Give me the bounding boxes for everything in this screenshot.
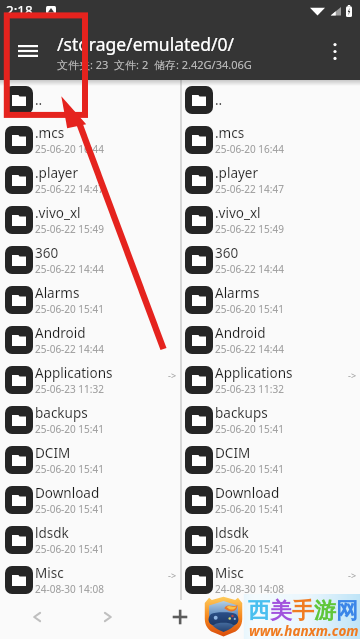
staticText: 2:18 xyxy=(6,2,33,20)
staticText: 25-06-20 15:41 xyxy=(215,302,284,316)
staticText: 24-08-30 14:08 xyxy=(35,582,104,596)
button[interactable]: Misc xyxy=(0,560,180,600)
button[interactable]: Download xyxy=(182,480,360,520)
button[interactable]: Alarms xyxy=(0,280,180,320)
staticText: 25-06-22 14:47 xyxy=(35,182,104,196)
staticText: Alarms xyxy=(35,284,80,302)
staticText: 25-06-20 15:41 xyxy=(35,302,104,316)
staticText: Applications xyxy=(35,364,113,382)
staticText: .. xyxy=(215,91,223,109)
staticText: 25-06-20 15:41 xyxy=(35,542,104,556)
button[interactable]: DCIM xyxy=(182,440,360,480)
staticText: DCIM xyxy=(215,444,251,462)
staticText: 网 xyxy=(336,597,358,625)
button[interactable]: Back xyxy=(20,600,53,633)
staticText: 25-06-20 15:41 xyxy=(215,542,284,556)
staticText: .vivo_xl xyxy=(215,204,261,222)
staticText: Misc xyxy=(35,564,64,582)
staticText: backups xyxy=(35,404,88,422)
staticText: ldsdk xyxy=(215,524,249,542)
staticText: DCIM xyxy=(35,444,71,462)
button[interactable]: Android xyxy=(182,320,360,360)
button[interactable]: Forward xyxy=(91,600,124,633)
button[interactable]: Applications xyxy=(0,360,180,400)
staticText: 手 xyxy=(292,597,314,625)
staticText: Download xyxy=(35,484,100,502)
staticText: .. xyxy=(35,91,43,109)
staticText: 25-06-23 11:32 xyxy=(215,382,284,396)
button[interactable]: backups xyxy=(0,400,180,440)
staticText: 25-06-20 15:41 xyxy=(35,462,104,476)
staticText: -> xyxy=(348,369,357,381)
staticText: 25-06-22 14:44 xyxy=(35,342,104,356)
staticText: 360 xyxy=(35,244,59,262)
button[interactable]: Misc xyxy=(182,560,360,600)
button[interactable]: Alarms xyxy=(182,280,360,320)
staticText: Download xyxy=(215,484,280,502)
staticText: 文件夹: 23 文件: 2 储存: 2.42G/34.06G xyxy=(57,57,252,72)
staticText: backups xyxy=(215,404,268,422)
staticText: Misc xyxy=(215,564,244,582)
staticText: 西 xyxy=(248,597,270,625)
button[interactable]: ldsdk xyxy=(0,520,180,560)
staticText: 25-06-20 15:41 xyxy=(215,462,284,476)
staticText: /storage/emulated/0/ xyxy=(57,32,234,56)
staticText: 25-06-22 14:44 xyxy=(215,262,284,276)
button[interactable]: Download xyxy=(0,480,180,520)
staticText: Alarms xyxy=(215,284,260,302)
staticText: 25-06-22 15:49 xyxy=(35,222,104,236)
staticText: 游 xyxy=(314,597,336,625)
staticText: -> xyxy=(348,569,357,581)
staticText: .mcs xyxy=(215,124,245,142)
staticText: 25-06-23 11:32 xyxy=(35,382,104,396)
staticText: .vivo_xl xyxy=(35,204,81,222)
button[interactable]: Android xyxy=(0,320,180,360)
staticText: -> xyxy=(168,369,177,381)
staticText: ldsdk xyxy=(35,524,69,542)
staticText: 25-06-20 16:44 xyxy=(215,142,284,156)
button[interactable]: DCIM xyxy=(0,440,180,480)
button[interactable]: .mcs xyxy=(182,120,360,160)
button[interactable]: Applications xyxy=(182,360,360,400)
staticText: .player xyxy=(35,164,79,182)
button[interactable]: 360 xyxy=(0,240,180,280)
button[interactable]: .vivo_xl xyxy=(0,200,180,240)
staticText: 美 xyxy=(270,597,292,625)
staticText: www.hanxm.com xyxy=(249,622,359,639)
staticText: 25-06-22 14:44 xyxy=(215,342,284,356)
staticText: 25-06-20 15:41 xyxy=(35,502,104,516)
staticText: 360 xyxy=(215,244,239,262)
button[interactable]: .. xyxy=(0,80,180,120)
button[interactable]: Add xyxy=(163,600,196,633)
button[interactable]: ldsdk xyxy=(182,520,360,560)
staticText: 25-06-22 14:47 xyxy=(215,182,284,196)
staticText: Android xyxy=(215,324,266,342)
button[interactable]: .. xyxy=(182,80,360,120)
staticText: 25-06-20 15:41 xyxy=(215,422,284,436)
staticText: 25-06-20 15:41 xyxy=(215,502,284,516)
button[interactable]: backups xyxy=(182,400,360,440)
button[interactable]: .player xyxy=(182,160,360,200)
button[interactable]: .player xyxy=(0,160,180,200)
button[interactable]: 360 xyxy=(182,240,360,280)
staticText: .mcs xyxy=(35,124,65,142)
staticText: Android xyxy=(35,324,86,342)
staticText: 25-06-22 14:44 xyxy=(35,262,104,276)
button[interactable]: Menu xyxy=(8,31,48,71)
staticText: .player xyxy=(215,164,259,182)
button[interactable]: .vivo_xl xyxy=(182,200,360,240)
staticText: 24-08-30 14:08 xyxy=(215,582,284,596)
staticText: 25-06-20 15:41 xyxy=(35,422,104,436)
staticText: 25-06-22 15:49 xyxy=(215,222,284,236)
staticText: 25-06-20 16:44 xyxy=(35,142,104,156)
button[interactable]: .mcs xyxy=(0,120,180,160)
button[interactable]: More options xyxy=(317,33,353,69)
staticText: -> xyxy=(168,569,177,581)
staticText: Applications xyxy=(215,364,293,382)
